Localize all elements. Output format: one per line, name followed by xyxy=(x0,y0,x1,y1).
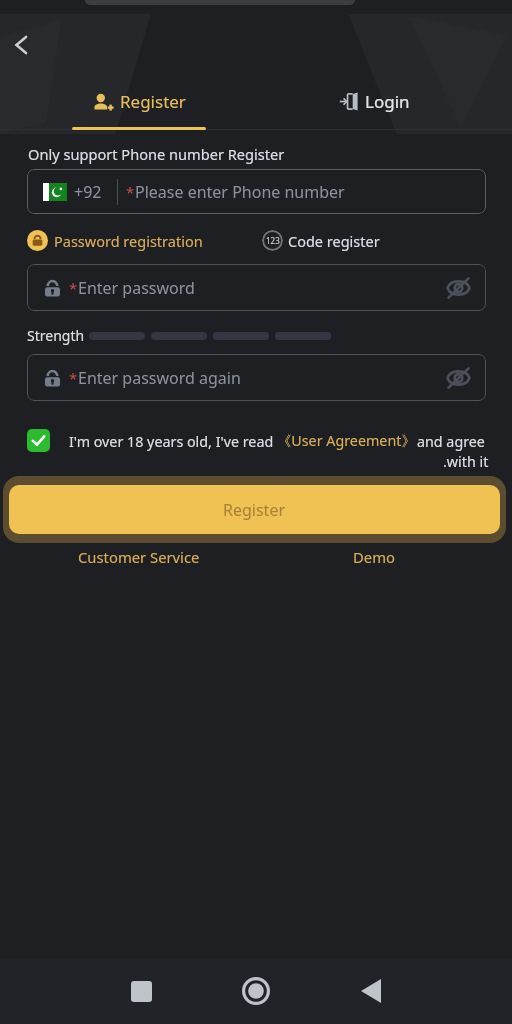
staticText: Code register xyxy=(288,231,380,251)
button[interactable]: Show password xyxy=(444,364,472,392)
staticText: Register xyxy=(223,499,286,521)
staticText: Strength xyxy=(27,326,85,345)
staticText: 123 xyxy=(266,235,280,246)
staticText: Register xyxy=(120,90,186,113)
button[interactable]: Demo xyxy=(334,546,414,568)
staticText: Customer Service xyxy=(78,547,200,567)
button[interactable]: Back xyxy=(3,27,39,63)
button[interactable]: Register xyxy=(3,476,506,543)
button[interactable]: Agree to terms checkbox xyxy=(27,429,50,452)
staticText: Login xyxy=(365,90,410,113)
button[interactable]: +92 xyxy=(27,169,486,214)
button[interactable]: Register xyxy=(72,78,206,134)
staticText: * xyxy=(69,368,78,388)
button[interactable]: 123 xyxy=(262,230,380,251)
button[interactable]: * xyxy=(27,354,486,401)
button[interactable]: 《User Agreement》 xyxy=(277,431,416,451)
staticText: Demo xyxy=(353,547,395,567)
button[interactable]: Password registration xyxy=(27,230,203,251)
staticText: .with it xyxy=(443,452,489,471)
staticText: Please enter Phone number xyxy=(135,181,345,203)
staticText: Enter password again xyxy=(78,367,241,389)
staticText: * xyxy=(126,182,135,202)
staticText: Only support Phone number Register xyxy=(28,144,285,164)
button[interactable]: Customer Service xyxy=(59,546,219,568)
staticText: I'm over 18 years old, I've read xyxy=(69,432,274,451)
button[interactable]: Show password xyxy=(444,274,472,302)
staticText: and agree xyxy=(417,432,485,451)
staticText: Password registration xyxy=(54,231,203,251)
button[interactable]: Recent apps xyxy=(117,967,165,1015)
button[interactable]: * xyxy=(27,264,486,311)
button[interactable]: Login xyxy=(310,78,438,134)
button[interactable]: Back xyxy=(347,967,395,1015)
staticText: * xyxy=(69,278,78,298)
staticText: Enter password xyxy=(78,277,195,299)
button[interactable]: Home xyxy=(232,967,280,1015)
staticText: +92 xyxy=(74,181,102,203)
